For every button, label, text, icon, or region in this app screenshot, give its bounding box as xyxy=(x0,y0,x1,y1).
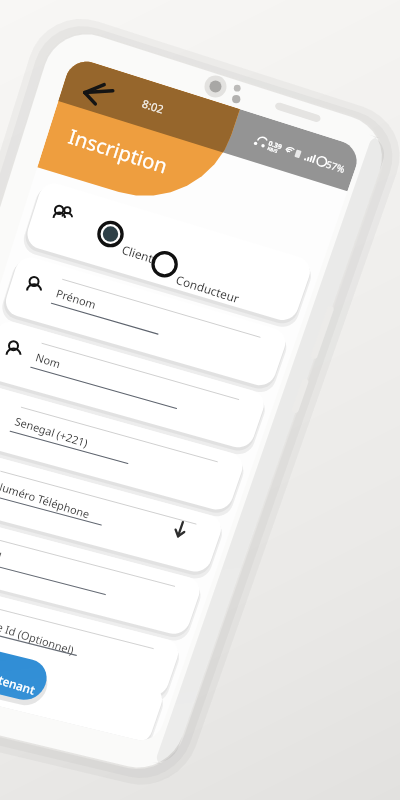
button[interactable]: S'inscrire maintenant xyxy=(12,646,162,694)
button[interactable]: Retour xyxy=(78,58,120,92)
button[interactable] xyxy=(2,426,302,476)
button[interactable] xyxy=(22,302,330,350)
button[interactable] xyxy=(0,560,286,608)
button[interactable] xyxy=(0,490,292,538)
button[interactable] xyxy=(12,362,316,410)
button[interactable] xyxy=(30,240,338,288)
button[interactable] xyxy=(86,182,172,216)
